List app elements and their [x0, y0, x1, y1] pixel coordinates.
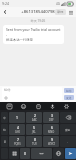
staticText: 6 [51, 125, 53, 130]
button[interactable]: 9 [43, 136, 59, 147]
staticText: 短信 [4, 88, 11, 92]
button[interactable]: Back [0, 7, 10, 17]
button[interactable]: 6 [43, 124, 59, 135]
button[interactable]: 短信 [2, 87, 62, 101]
button[interactable]: 7 [9, 136, 25, 147]
staticText: JKL [32, 130, 36, 134]
staticText: 举报 [57, 10, 64, 14]
button[interactable]: 1 [9, 112, 25, 123]
staticText: 8 [34, 137, 36, 142]
staticText: TUV [32, 142, 37, 146]
staticText: 短信 [66, 89, 72, 93]
button[interactable]: More options [67, 8, 75, 16]
staticText: 昨天 19:26 [0, 19, 76, 23]
staticText: 重输 [65, 128, 71, 131]
staticText: 9:24 [2, 1, 9, 6]
button[interactable]: 短信 [64, 88, 74, 93]
button[interactable]: 0 [20, 148, 30, 159]
staticText: 5 [33, 125, 35, 130]
button[interactable]: # [1, 136, 8, 147]
staticText: 符 [3, 128, 6, 132]
button[interactable]: 2 [26, 112, 42, 123]
staticText: 7 [17, 137, 19, 142]
staticText: MNO [48, 130, 55, 134]
button[interactable]: Settings [62, 102, 71, 110]
staticText: 0 [24, 151, 26, 156]
staticText: WXYZ [48, 142, 55, 146]
button[interactable]: 8 [26, 136, 42, 147]
staticText: 1 [16, 115, 18, 120]
button[interactable]: 符 [1, 124, 8, 135]
button[interactable]: Space [31, 148, 52, 159]
staticText: # [4, 140, 6, 144]
button[interactable]: Clipboard [34, 102, 43, 110]
staticText: 。 [67, 140, 70, 143]
button[interactable]: 中 [1, 112, 8, 123]
button[interactable]: Symbols [9, 148, 19, 159]
button[interactable]: 4 [9, 124, 25, 135]
button[interactable]: 发送 [64, 95, 74, 100]
button[interactable]: Backspace [60, 112, 76, 123]
staticText: +8613185440798 [21, 9, 55, 15]
staticText: PQRS [14, 142, 21, 146]
button[interactable]: Keyboard layout [5, 102, 14, 110]
button[interactable]: 5 [26, 124, 42, 135]
staticText: GHI [15, 130, 20, 134]
staticText: 3 [51, 113, 53, 118]
staticText: Sent from your Twilio trial account - [6, 27, 61, 37]
staticText: 4G [56, 2, 60, 6]
staticText: ABC [32, 118, 37, 122]
button[interactable]: Send [65, 148, 76, 159]
staticText: 2 [34, 113, 36, 118]
button[interactable]: 3 [43, 112, 59, 123]
staticText: DEF [49, 118, 54, 122]
button[interactable]: 重输 [60, 124, 76, 135]
staticText: 发送 [66, 96, 72, 100]
staticText: 4 [17, 125, 19, 130]
button[interactable]: Language [53, 148, 64, 159]
button[interactable]: Voice input [48, 102, 57, 110]
button[interactable]: 举报 [55, 9, 66, 15]
button[interactable]: Sent from your Twilio trial account - [3, 25, 64, 44]
staticText: 9 [51, 137, 53, 142]
button[interactable]: Emoji [19, 102, 28, 110]
staticText: 祝连木达一行康复 [6, 38, 34, 42]
staticText: 中 [3, 116, 6, 120]
